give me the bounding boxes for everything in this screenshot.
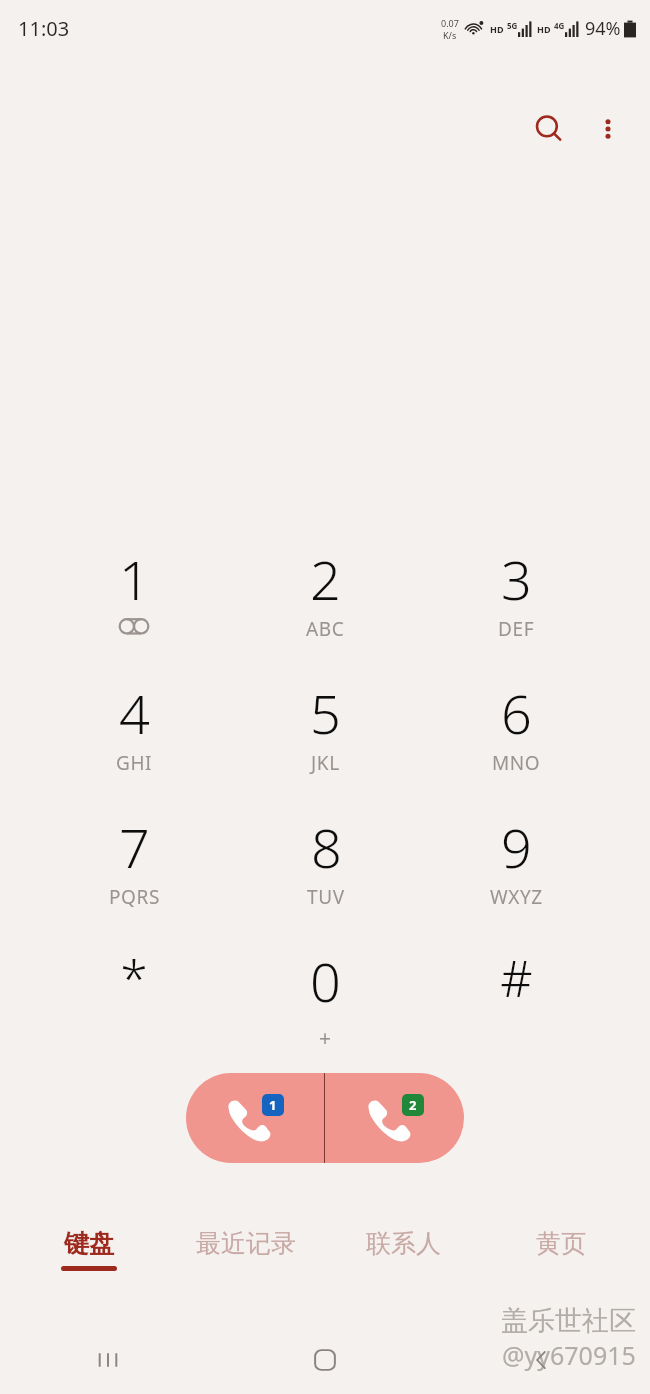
button[interactable]: 1 [38,542,230,662]
staticText: 黄页 [536,1228,586,1259]
staticText: PQRS [109,884,160,910]
staticText: JKL [311,750,340,776]
staticText: 最近记录 [196,1228,296,1259]
staticText: 联系人 [366,1228,441,1259]
staticText: 11:03 [18,15,70,42]
staticText: 94% [585,16,621,41]
button[interactable]: 9 [421,810,612,930]
button[interactable]: Recents [0,1326,216,1394]
staticText: HD [490,23,504,35]
button[interactable]: More options [582,103,634,155]
staticText: MNO [492,750,541,776]
button[interactable]: 4 [38,676,230,796]
button[interactable]: # [421,944,612,1064]
staticText: 8 [311,810,342,884]
staticText: GHI [116,750,153,776]
button[interactable]: Back [433,1326,650,1394]
button[interactable]: 黄页 [482,1228,640,1292]
staticText: K/s [443,29,457,41]
button[interactable]: Call with SIM 2 [325,1073,464,1163]
staticText: 2 [409,1096,417,1114]
staticText: 9 [501,810,532,884]
staticText: * [120,944,148,1012]
button[interactable]: Call with SIM 1 [186,1073,324,1163]
button[interactable]: 5 [230,676,421,796]
staticText: DEF [498,616,535,642]
button[interactable]: Search [520,100,578,158]
button[interactable]: Home [216,1326,433,1394]
staticText: ABC [306,616,345,642]
staticText: 3 [501,542,532,616]
staticText: @yy670915 [502,1338,636,1372]
button[interactable]: 2 [230,542,421,662]
staticText: 键盘 [64,1228,114,1259]
staticText: 7 [119,810,150,884]
staticText: 5 [310,676,341,750]
staticText: 1 [269,1096,277,1114]
staticText: TUV [307,884,345,910]
button[interactable]: 6 [421,676,612,796]
staticText: 0.07 [441,17,459,29]
staticText: 0 [310,944,341,1018]
button[interactable]: 8 [230,810,421,930]
staticText: 1 [119,542,150,616]
button[interactable]: 0 [230,944,421,1064]
staticText: 2 [310,542,341,616]
button[interactable]: 最近记录 [167,1228,324,1292]
staticText: 4G [554,20,565,31]
staticText: 盖乐世社区 [501,1304,636,1338]
button[interactable]: 联系人 [324,1228,482,1292]
button[interactable]: 键盘 [10,1228,167,1292]
button[interactable]: * [38,944,230,1064]
staticText: 4 [119,676,150,750]
button[interactable]: 7 [38,810,230,930]
staticText: + [319,1024,332,1053]
button[interactable]: 3 [421,542,612,662]
staticText: WXYZ [490,884,543,910]
staticText: 6 [501,676,532,750]
staticText: HD [537,23,551,35]
staticText: 5G [507,20,518,31]
staticText: # [500,944,533,1012]
